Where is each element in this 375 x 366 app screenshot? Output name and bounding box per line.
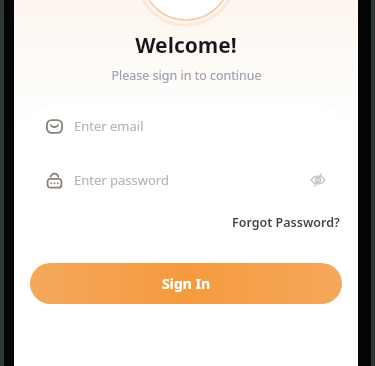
button[interactable]: Forgot Password?	[230, 211, 342, 234]
staticText: Enter email	[74, 117, 144, 135]
staticText: Please sign in to continue	[111, 67, 262, 84]
button[interactable]: Enter email	[30, 106, 342, 146]
button[interactable]: Sign In	[30, 263, 342, 304]
button[interactable]: Enter password	[30, 160, 342, 200]
staticText: Welcome!	[135, 31, 237, 60]
staticText: Sign In	[162, 274, 211, 293]
staticText: Enter password	[74, 171, 169, 189]
button[interactable]: Show password	[308, 170, 328, 190]
staticText: Forgot Password?	[232, 214, 340, 231]
